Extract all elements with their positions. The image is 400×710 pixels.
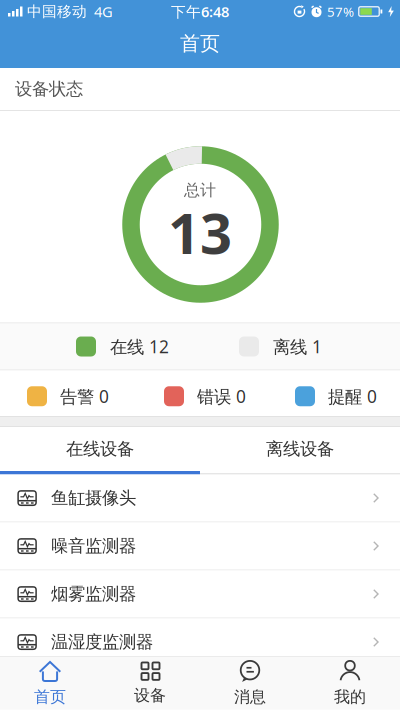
staticText: 4G <box>94 2 113 21</box>
button[interactable]: 噪音监测器 <box>0 522 400 569</box>
button[interactable]: 烟雾监测器 <box>0 570 400 617</box>
button[interactable]: 温湿度监测器 <box>0 618 400 665</box>
staticText: 鱼缸摄像头 <box>51 487 136 509</box>
staticText: 错误 0 <box>197 385 246 408</box>
staticText: 在线 12 <box>110 335 169 358</box>
staticText: 首页 <box>34 687 66 707</box>
button[interactable]: 首页 <box>0 657 100 709</box>
button[interactable]: 我的 <box>300 657 400 709</box>
staticText: 离线 1 <box>273 335 322 358</box>
staticText: 设备 <box>134 685 166 705</box>
staticText: 噪音监测器 <box>51 535 136 557</box>
staticText: 提醒 0 <box>328 385 377 408</box>
button[interactable]: 设备 <box>100 657 200 709</box>
staticText: 离线设备 <box>266 438 334 460</box>
staticText: 下午6:48 <box>171 2 229 21</box>
button[interactable]: 鱼缸摄像头 <box>0 474 400 521</box>
staticText: 我的 <box>334 687 366 707</box>
button[interactable]: 离线设备 <box>200 427 400 471</box>
staticText: 13 <box>168 195 232 269</box>
staticText: 总计 <box>184 180 216 200</box>
button[interactable]: 在线设备 <box>0 427 200 471</box>
staticText: 烟雾监测器 <box>51 583 136 605</box>
staticText: 温湿度监测器 <box>51 631 153 653</box>
staticText: 中国移动 <box>27 2 87 20</box>
button[interactable]: 消息 <box>200 657 300 709</box>
staticText: 在线设备 <box>66 438 134 460</box>
staticText: 告警 0 <box>60 385 109 408</box>
staticText: 首页 <box>180 31 220 56</box>
staticText: 消息 <box>234 687 266 707</box>
staticText: 设备状态 <box>15 78 83 100</box>
staticText: 57% <box>327 3 354 20</box>
